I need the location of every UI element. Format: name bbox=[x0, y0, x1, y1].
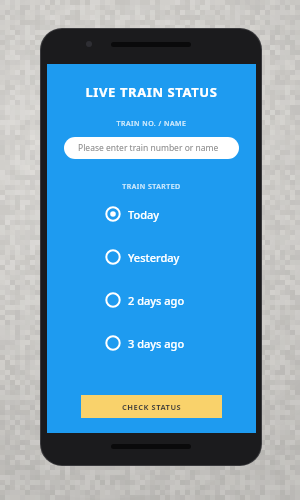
staticText: Please enter train number or name bbox=[78, 142, 219, 154]
staticText: LIVE TRAIN STATUS bbox=[47, 83, 256, 101]
staticText: Yesterday bbox=[128, 250, 180, 265]
button[interactable]: Please enter train number or name bbox=[64, 137, 239, 159]
button[interactable]: 2 days ago bbox=[47, 289, 256, 311]
staticText: 3 days ago bbox=[128, 336, 185, 351]
button[interactable]: 3 days ago bbox=[47, 332, 256, 354]
staticText: 2 days ago bbox=[128, 293, 185, 308]
staticText: TRAIN NO. / NAME bbox=[47, 119, 256, 129]
button[interactable]: Yesterday bbox=[47, 246, 256, 268]
staticText: TRAIN STARTED bbox=[47, 182, 256, 192]
button[interactable]: CHECK STATUS bbox=[81, 395, 222, 418]
staticText: CHECK STATUS bbox=[122, 402, 182, 412]
staticText: Today bbox=[128, 207, 160, 222]
button[interactable]: Today bbox=[47, 203, 256, 225]
